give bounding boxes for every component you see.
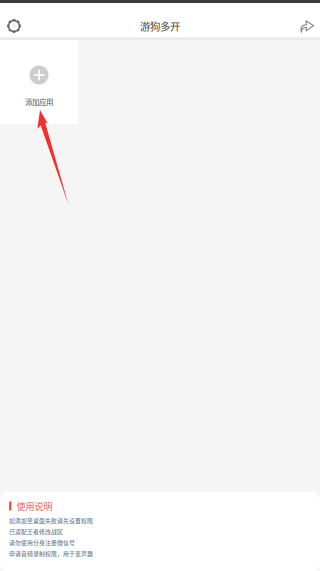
button[interactable]: Share [294, 14, 320, 37]
button[interactable]: 添加应用 [0, 40, 78, 124]
staticText: 申请音频录制权限，用于变声器 [9, 549, 93, 558]
staticText: 使用说明 [16, 499, 52, 512]
button[interactable]: Settings [0, 14, 28, 37]
staticText: 已适配王者修改战区 [9, 527, 63, 536]
staticText: 游狗多开 [140, 18, 180, 34]
staticText: 请勿使用分身注册微信号 [9, 538, 75, 547]
staticText: 如添加至桌面失败请先设置权限 [9, 516, 93, 525]
staticText: 添加应用 [25, 96, 53, 107]
